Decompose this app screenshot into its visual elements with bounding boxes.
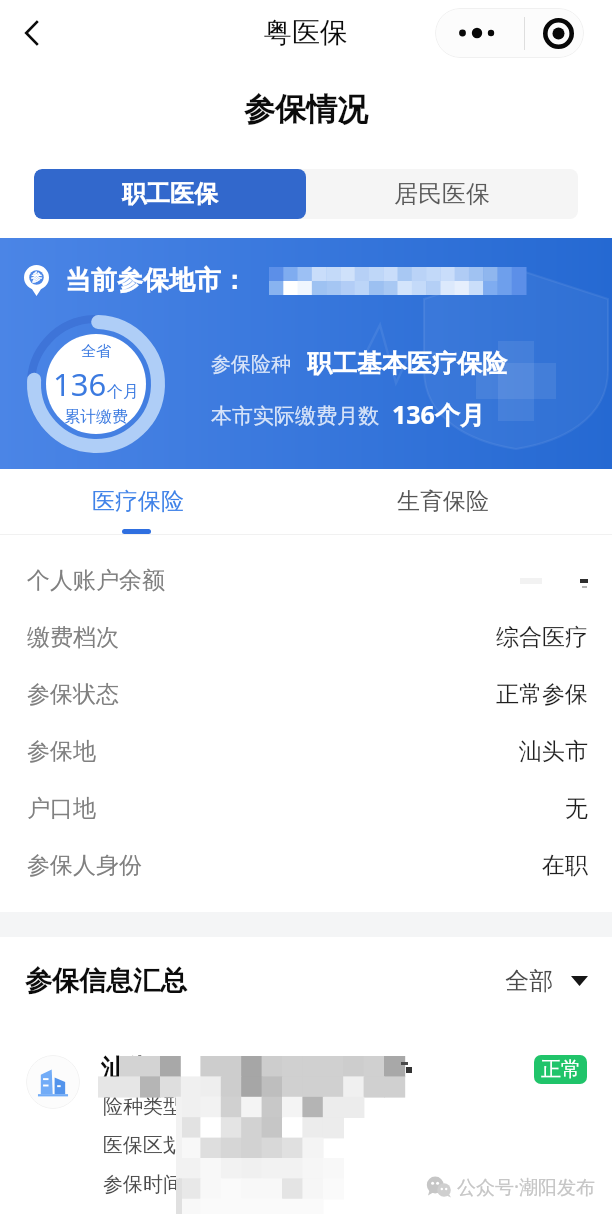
staticText: 在职 <box>542 851 588 880</box>
staticText: 汕头市 <box>519 737 588 766</box>
staticText: 医保区划 <box>103 1133 183 1158</box>
button[interactable]: 户口地 <box>0 780 612 837</box>
staticText: 参保时间 <box>103 1172 183 1197</box>
button[interactable]: 缴费档次 <box>0 609 612 666</box>
staticText: 粤医保 <box>264 15 348 50</box>
staticText: 全部 <box>505 966 553 996</box>
staticText: 136个月 <box>392 397 485 431</box>
button[interactable]: 参保地 <box>0 723 612 780</box>
staticText: 汕头 <box>101 1053 151 1084</box>
staticText: 参保状态 <box>27 680 119 709</box>
staticText: 职工医保 <box>122 179 218 209</box>
button[interactable]: 参保状态 <box>0 666 612 723</box>
staticText: 136 <box>53 363 107 405</box>
staticText: 参保地 <box>27 737 96 766</box>
staticText: 参保险种 <box>211 352 291 377</box>
button[interactable]: 正常 <box>534 1055 587 1084</box>
button[interactable]: 生育保险 <box>351 469 535 535</box>
button[interactable]: 参保人身份 <box>0 837 612 894</box>
staticText: 职工基本医疗保险 <box>307 348 507 379</box>
staticText: 全省 <box>81 342 111 361</box>
staticText: 公众号·潮阳发布 <box>457 1174 596 1200</box>
staticText: 参 <box>31 270 42 284</box>
staticText: 险种类型 <box>103 1094 183 1119</box>
staticText: 正常 <box>541 1057 581 1082</box>
button[interactable]: 医疗保险 <box>46 469 230 535</box>
button[interactable]: Back <box>8 9 56 57</box>
button[interactable]: More options <box>435 8 524 58</box>
staticText: 无 <box>565 794 588 823</box>
staticText: 缴费档次 <box>27 623 119 652</box>
staticText: 正常参保 <box>496 680 588 709</box>
staticText: 居民医保 <box>394 179 490 209</box>
staticText: 参保情况 <box>244 90 368 129</box>
staticText: 本市实际缴费月数 <box>211 403 379 429</box>
staticText: 医疗保险 <box>92 487 184 516</box>
button[interactable]: 职工医保 <box>34 169 306 219</box>
staticText: 累计缴费 <box>64 407 128 427</box>
staticText: 个人账户余额 <box>27 566 165 595</box>
button[interactable]: 居民医保 <box>306 169 578 219</box>
button[interactable]: 全部 <box>505 966 588 996</box>
staticText: 户口地 <box>27 794 96 823</box>
staticText: 个月 <box>107 382 139 402</box>
button[interactable]: Close mini program <box>525 8 584 58</box>
staticText: 生育保险 <box>397 487 489 516</box>
staticText: 综合医疗 <box>496 623 588 652</box>
staticText: 参保信息汇总 <box>25 964 187 998</box>
staticText: 参保人身份 <box>27 851 142 880</box>
staticText: 当前参保地市： <box>65 264 247 297</box>
button[interactable]: 个人账户余额 <box>0 552 612 609</box>
